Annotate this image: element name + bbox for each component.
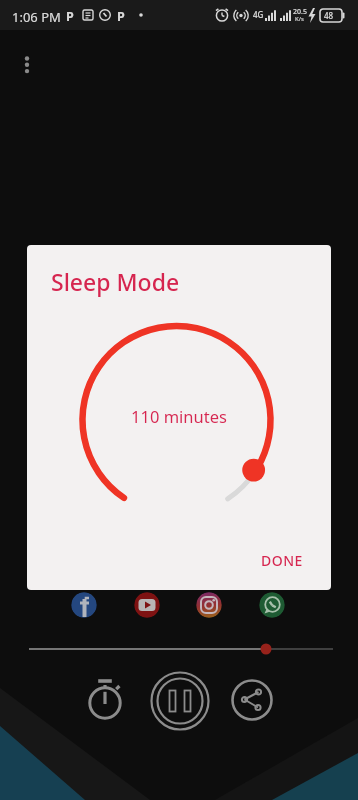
staticText: K/s	[295, 15, 304, 23]
staticText: 48	[324, 10, 334, 21]
staticText: DONE	[261, 551, 303, 570]
staticText: Sleep Mode	[51, 266, 180, 297]
button[interactable]	[259, 592, 285, 618]
button[interactable]	[150, 671, 210, 731]
button[interactable]	[16, 50, 38, 80]
staticText: 110 minutes	[27, 405, 331, 427]
button[interactable]	[230, 679, 274, 723]
staticText: 1:06 PM	[12, 8, 61, 26]
button[interactable]	[134, 592, 160, 618]
button[interactable]	[71, 592, 97, 618]
button[interactable]	[82, 678, 128, 726]
staticText: 4G	[253, 9, 264, 20]
staticText: P	[117, 8, 125, 25]
button[interactable]: DONE	[249, 543, 315, 577]
staticText: P	[66, 8, 74, 25]
button[interactable]	[196, 592, 222, 618]
button[interactable]	[22, 637, 340, 661]
staticText: 20.5	[293, 7, 307, 17]
